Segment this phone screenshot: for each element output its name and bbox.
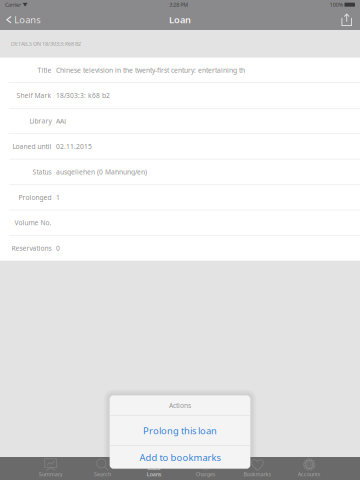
staticText: 02.11.2015	[56, 142, 92, 151]
staticText: Status	[32, 167, 51, 176]
button[interactable]: Accounts	[283, 457, 335, 480]
staticText: Prolong this loan	[143, 424, 217, 437]
button[interactable]: Bookmarks	[232, 457, 283, 480]
staticText: Loans	[14, 13, 40, 26]
staticText: AAI	[56, 116, 66, 125]
button[interactable]: Share	[335, 10, 360, 29]
staticText: Charges	[196, 471, 216, 478]
staticText: 1	[56, 193, 60, 202]
staticText: DETAILS ON 18/303:3: K68 B2	[11, 40, 81, 47]
button[interactable]: Charges	[180, 457, 232, 480]
staticText: 0	[56, 244, 60, 253]
button[interactable]: Add to bookmarks	[110, 446, 250, 469]
button[interactable]: Summary	[25, 457, 77, 480]
staticText: Library	[29, 116, 51, 125]
staticText: Bookmarks	[243, 471, 271, 478]
staticText: 3:28 PM	[169, 1, 188, 8]
staticText: Loans	[147, 471, 162, 478]
button[interactable]: Search	[77, 457, 128, 480]
staticText: Loan	[169, 13, 191, 26]
staticText: Reservations	[11, 244, 51, 253]
staticText: Actions	[169, 401, 191, 410]
staticText: Accounts	[298, 471, 321, 478]
staticText: Prolonged	[18, 193, 51, 202]
staticText: Summary	[39, 471, 63, 478]
staticText: Carrier	[5, 1, 21, 8]
staticText: ausgeliehen (0 Mahnung/en)	[56, 167, 147, 176]
staticText: 18/303:3: k68 b2	[56, 91, 110, 100]
staticText: Search	[94, 471, 111, 478]
staticText: Title	[37, 66, 51, 74]
button[interactable]: Loans	[0, 8, 45, 31]
staticText: 100%	[330, 1, 343, 8]
staticText: Shelf Mark	[16, 91, 51, 100]
staticText: Loaned until	[12, 142, 51, 151]
staticText: Chinese television in the twenty-first c…	[56, 66, 245, 74]
staticText: Add to bookmarks	[139, 451, 220, 463]
button[interactable]: Prolong this loan	[110, 416, 250, 445]
button[interactable]: Loans	[128, 457, 180, 480]
staticText: Volume No.	[14, 218, 51, 227]
